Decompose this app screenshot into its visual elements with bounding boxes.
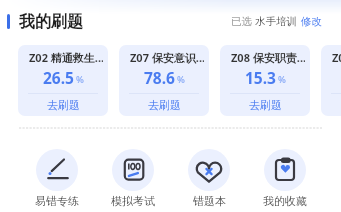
staticText: 修改 — [301, 15, 322, 28]
staticText: 水手培训 — [255, 15, 297, 28]
button[interactable]: Z08 保安职责... — [220, 45, 310, 116]
button[interactable]: 模拟考试 — [95, 149, 171, 208]
button[interactable]: Z02 精通救生... — [18, 45, 108, 116]
staticText: % — [177, 73, 185, 86]
staticText: Z08 保安职责... — [231, 50, 305, 65]
staticText: 易错专练 — [35, 194, 79, 208]
staticText: 错题本 — [193, 194, 226, 208]
button[interactable]: 我的收藏 — [247, 149, 323, 208]
staticText: 78.6 — [144, 67, 175, 88]
staticText: 我的收藏 — [263, 194, 307, 208]
staticText: 模拟考试 — [111, 194, 155, 208]
button[interactable]: 修改 — [301, 15, 322, 28]
button[interactable]: Z07 保安意识... — [119, 45, 209, 116]
staticText: 去刷题 — [249, 98, 282, 112]
staticText: Z09 船舶防火... — [332, 50, 341, 65]
staticText: 26.5 — [43, 67, 74, 88]
staticText: % — [278, 73, 286, 86]
staticText: 已选 — [231, 14, 255, 28]
button[interactable]: 易错专练 — [18, 149, 95, 208]
staticText: % — [76, 73, 84, 86]
staticText: 15.3 — [245, 67, 276, 88]
staticText: 去刷题 — [47, 98, 80, 112]
staticText: Z02 精通救生... — [29, 50, 103, 65]
button[interactable]: 错题本 — [171, 149, 247, 208]
staticText: Z07 保安意识... — [130, 50, 204, 65]
button[interactable]: Z09 船舶防火... — [321, 45, 341, 116]
staticText: 去刷题 — [148, 98, 181, 112]
staticText: 我的刷题 — [19, 12, 83, 30]
